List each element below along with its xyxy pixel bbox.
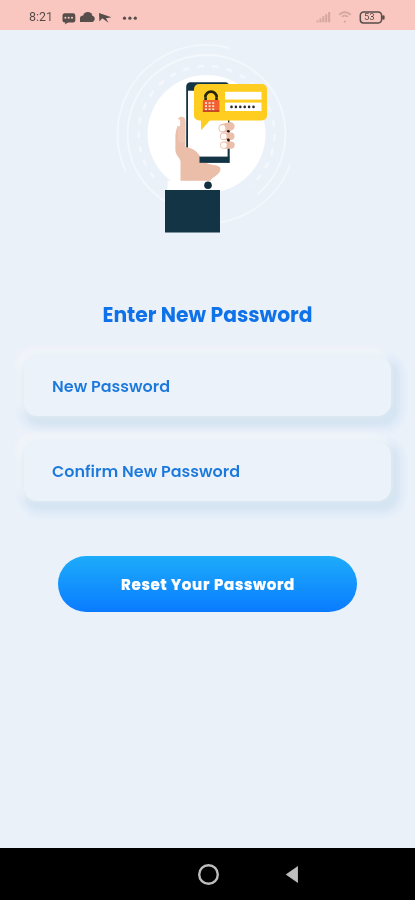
button[interactable] — [0, 339, 415, 435]
button[interactable]: Reset Your Password — [58, 556, 357, 612]
staticText: 53 — [364, 11, 375, 22]
staticText: New Password — [52, 375, 170, 397]
button[interactable]: Back — [269, 851, 315, 897]
button[interactable] — [0, 424, 415, 520]
staticText: Enter New Password — [0, 301, 415, 329]
staticText: Reset Your Password — [121, 574, 295, 595]
staticText: Confirm New Password — [52, 460, 241, 482]
staticText: 8:21 — [29, 9, 54, 24]
button[interactable]: Home — [185, 851, 231, 897]
